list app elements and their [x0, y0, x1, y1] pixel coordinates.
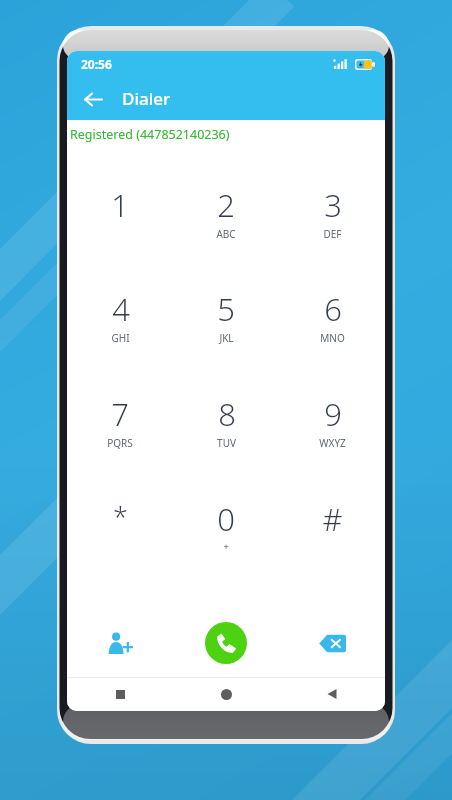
- button[interactable]: #: [279, 498, 385, 603]
- button[interactable]: 6: [279, 288, 385, 393]
- staticText: #: [322, 498, 343, 540]
- button[interactable]: 4: [67, 288, 173, 393]
- staticText: *: [113, 498, 128, 535]
- button[interactable]: Back: [279, 677, 385, 711]
- staticText: GHI: [111, 331, 130, 345]
- button[interactable]: 1: [67, 184, 173, 288]
- staticText: TUV: [217, 436, 236, 450]
- staticText: JKL: [219, 331, 234, 345]
- staticText: 6: [324, 288, 342, 330]
- staticText: 3: [324, 184, 342, 226]
- staticText: 1: [111, 184, 129, 226]
- button[interactable]: 3: [279, 184, 385, 288]
- staticText: 0: [217, 498, 235, 540]
- staticText: 7: [111, 393, 129, 435]
- button[interactable]: 0: [173, 498, 279, 603]
- button[interactable]: 2: [173, 184, 279, 288]
- button[interactable]: Call: [173, 609, 279, 677]
- button[interactable]: Back: [75, 81, 111, 117]
- button[interactable]: 5: [173, 288, 279, 393]
- button[interactable]: Home: [173, 677, 279, 711]
- staticText: Registered (447852140236): [70, 126, 230, 143]
- staticText: 4: [112, 288, 130, 330]
- staticText: 2: [217, 184, 235, 226]
- button[interactable]: Add contact: [67, 609, 173, 677]
- staticText: 20:56: [81, 56, 112, 72]
- staticText: ABC: [216, 227, 236, 241]
- button[interactable]: *: [67, 498, 173, 603]
- button[interactable]: Recents: [67, 677, 173, 711]
- staticText: 8: [218, 393, 236, 435]
- button[interactable]: 8: [173, 393, 279, 498]
- staticText: 5: [217, 288, 235, 330]
- button[interactable]: Backspace: [279, 609, 385, 677]
- staticText: Dialer: [122, 87, 171, 110]
- staticText: +: [223, 540, 229, 552]
- button[interactable]: 7: [67, 393, 173, 498]
- staticText: 9: [324, 393, 342, 435]
- staticText: MNO: [320, 331, 345, 345]
- staticText: DEF: [323, 227, 342, 241]
- staticText: PQRS: [107, 436, 133, 450]
- button[interactable]: 9: [279, 393, 385, 498]
- staticText: WXYZ: [319, 436, 346, 450]
